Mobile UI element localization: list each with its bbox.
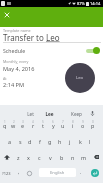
- button[interactable]: l: [85, 133, 95, 149]
- staticText: 8: [72, 120, 74, 124]
- button[interactable]: Leo: [65, 63, 95, 93]
- staticText: 2:14 PM: [3, 81, 25, 89]
- staticText: Lee: [45, 111, 54, 117]
- staticText: d: [28, 138, 32, 145]
- button[interactable]: Close: [0, 7, 14, 23]
- button[interactable]: Schedule: [0, 45, 103, 56]
- staticText: z: [17, 154, 20, 161]
- button[interactable]: a: [4, 133, 15, 149]
- button[interactable]: English: [39, 168, 76, 177]
- button[interactable]: 4: [28, 118, 38, 133]
- staticText: ,: [18, 169, 20, 176]
- button[interactable]: h: [55, 133, 65, 149]
- staticText: 6: [52, 120, 54, 124]
- staticText: Template name: [3, 28, 31, 33]
- staticText: s: [19, 138, 22, 145]
- staticText: v: [49, 154, 52, 161]
- staticText: e: [21, 122, 25, 129]
- button[interactable]: c: [34, 149, 45, 165]
- button[interactable]: g: [45, 133, 55, 149]
- button[interactable]: 3: [18, 118, 28, 133]
- button[interactable]: Shift: [0, 149, 13, 165]
- staticText: g: [48, 138, 52, 145]
- staticText: x: [27, 154, 30, 161]
- button[interactable]: s: [15, 133, 25, 149]
- staticText: j: [69, 138, 71, 145]
- button[interactable]: Emoji: [24, 165, 35, 181]
- staticText: c: [38, 154, 41, 161]
- button[interactable]: Let: [19, 105, 41, 118]
- button[interactable]: k: [75, 133, 85, 149]
- button[interactable]: v: [45, 149, 56, 165]
- staticText: w: [11, 122, 16, 129]
- staticText: 2: [13, 120, 15, 124]
- staticText: Leo: [76, 75, 84, 81]
- staticText: 4: [32, 120, 34, 124]
- staticText: At: [3, 76, 7, 81]
- button[interactable]: Lee: [38, 105, 60, 118]
- button[interactable]: f: [35, 133, 45, 149]
- staticText: r: [32, 122, 35, 129]
- button[interactable]: 7: [58, 118, 68, 133]
- staticText: 14:14: [90, 1, 101, 6]
- staticText: o: [81, 122, 85, 129]
- staticText: y: [52, 122, 55, 129]
- staticText: b: [60, 154, 64, 161]
- staticText: Keep: [71, 111, 82, 117]
- staticText: k: [79, 138, 82, 145]
- button[interactable]: 0: [88, 118, 98, 133]
- staticText: 1: [4, 120, 6, 124]
- staticText: 3: [22, 120, 24, 124]
- staticText: n: [71, 154, 75, 161]
- staticText: p: [91, 122, 95, 129]
- staticText: q: [3, 122, 7, 129]
- staticText: .: [80, 169, 82, 176]
- button[interactable]: n: [67, 149, 78, 165]
- staticText: 5: [42, 120, 44, 124]
- staticText: i: [72, 122, 74, 129]
- staticText: u: [61, 122, 65, 129]
- staticText: f: [39, 138, 41, 145]
- button[interactable]: z: [13, 149, 23, 165]
- staticText: t: [42, 122, 44, 129]
- button[interactable]: 2: [9, 118, 18, 133]
- button[interactable]: ,: [13, 165, 24, 181]
- staticText: ?123: [2, 171, 11, 176]
- button[interactable]: ?123: [0, 165, 13, 181]
- button[interactable]: 5: [38, 118, 48, 133]
- button[interactable]: j: [65, 133, 75, 149]
- button[interactable]: Voice input: [86, 107, 99, 120]
- button[interactable]: 9: [78, 118, 88, 133]
- button[interactable]: 8: [68, 118, 78, 133]
- staticText: Schedule: [3, 47, 26, 54]
- button[interactable]: b: [56, 149, 67, 165]
- staticText: h: [58, 138, 62, 145]
- staticText: m: [81, 154, 87, 161]
- button[interactable]: Enter: [86, 165, 103, 181]
- staticText: Leo: [46, 32, 60, 43]
- button[interactable]: 6: [48, 118, 58, 133]
- button[interactable]: Keep: [65, 105, 87, 118]
- button[interactable]: Backspace: [89, 149, 103, 165]
- staticText: Let: [27, 111, 34, 117]
- button[interactable]: 1: [0, 118, 9, 133]
- button[interactable]: .: [76, 165, 86, 181]
- staticText: 0: [92, 120, 94, 124]
- button[interactable]: Schedule toggle: [85, 46, 100, 55]
- button[interactable]: m: [78, 149, 89, 165]
- staticText: Monthly, every: [3, 59, 29, 64]
- staticText: a: [8, 138, 12, 145]
- staticText: English: [50, 170, 65, 176]
- staticText: 9: [82, 120, 84, 124]
- staticText: 87%: [77, 1, 85, 6]
- staticText: 7: [62, 120, 64, 124]
- staticText: Transfer to: [3, 32, 46, 43]
- button[interactable]: d: [25, 133, 35, 149]
- staticText: l: [89, 138, 91, 145]
- button[interactable]: x: [23, 149, 34, 165]
- staticText: May 4, 2016: [3, 65, 35, 73]
